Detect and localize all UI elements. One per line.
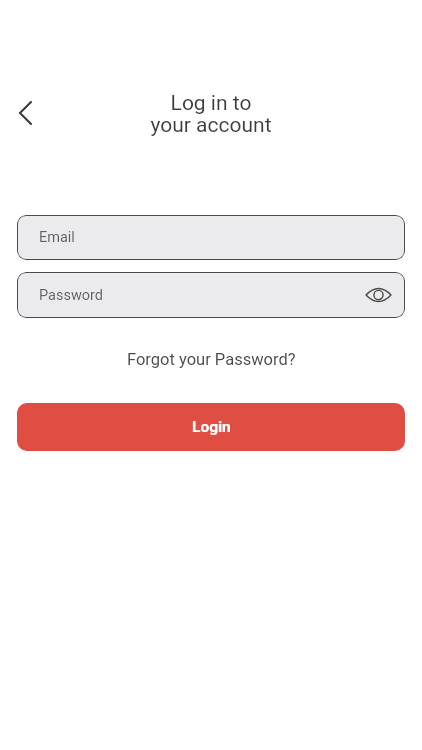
staticText: Log in to your account (150, 91, 272, 138)
staticText: Login (192, 418, 231, 436)
button[interactable]: Email (17, 215, 405, 260)
button[interactable]: Forgot your Password? (127, 350, 296, 369)
staticText: Password (39, 287, 104, 304)
button[interactable] (8, 96, 42, 130)
button[interactable]: Login (17, 403, 405, 451)
button[interactable]: Password (17, 272, 405, 318)
staticText: Email (39, 229, 75, 246)
